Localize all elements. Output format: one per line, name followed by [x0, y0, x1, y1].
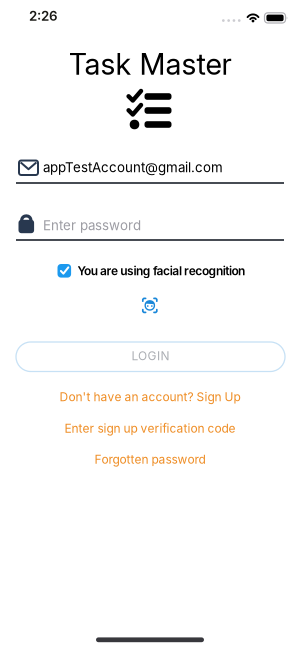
staticText: Forgotten password: [94, 452, 205, 467]
staticText: LOGIN: [131, 349, 169, 363]
staticText: Task Master: [68, 47, 231, 81]
button[interactable]: Enter password: [16, 210, 284, 241]
staticText: Enter password: [43, 218, 141, 233]
button[interactable]: Forgotten password: [94, 452, 205, 467]
staticText: appTestAccount@gmail.com: [43, 160, 223, 175]
staticText: Don't have an account? Sign Up: [59, 390, 240, 404]
button[interactable]: Enter sign up verification code: [64, 421, 235, 436]
button[interactable]: You are using facial recognition: [55, 261, 251, 281]
staticText: You are using facial recognition: [77, 264, 245, 278]
button[interactable]: Don't have an account? Sign Up: [59, 390, 240, 404]
button[interactable]: LOGIN: [16, 342, 285, 371]
button[interactable]: appTestAccount@gmail.com: [16, 153, 284, 184]
staticText: 2:26: [29, 8, 58, 24]
staticText: Enter sign up verification code: [64, 421, 235, 436]
button[interactable]: Face recognition: [140, 295, 160, 315]
